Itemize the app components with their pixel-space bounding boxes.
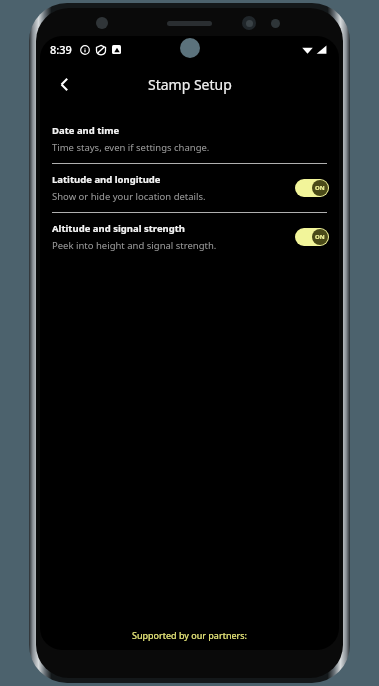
- staticText: Show or hide your location details.: [52, 190, 206, 203]
- staticText: ON: [315, 233, 325, 241]
- button[interactable]: Back: [44, 64, 84, 104]
- staticText: 8:39: [50, 42, 72, 57]
- staticText: Time stays, even if settings change.: [52, 141, 210, 154]
- staticText: Date and time: [52, 124, 120, 137]
- staticText: Peek into height and signal strength.: [52, 239, 217, 252]
- staticText: Supported by our partners:: [132, 629, 247, 641]
- staticText: Altitude and signal strength: [52, 222, 186, 235]
- button[interactable]: Altitude and signal strength: [40, 213, 339, 261]
- staticText: Stamp Setup: [148, 75, 232, 94]
- button[interactable]: Toggle on: [295, 179, 329, 197]
- button[interactable]: Toggle on: [295, 228, 329, 246]
- button[interactable]: Latitude and longitude: [40, 164, 339, 212]
- button[interactable]: Date and time: [40, 115, 339, 163]
- staticText: Latitude and longitude: [52, 173, 161, 186]
- staticText: ON: [315, 184, 325, 192]
